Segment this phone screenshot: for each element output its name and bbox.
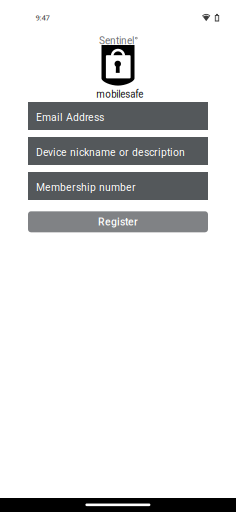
- button[interactable]: Email Address: [28, 102, 208, 130]
- staticText: Device nickname or description: [36, 146, 185, 159]
- staticText: mobilesafe: [96, 88, 143, 100]
- button[interactable]: Membership number: [28, 172, 208, 200]
- staticText: Email Address: [36, 111, 104, 124]
- button[interactable]: Device nickname or description: [28, 137, 208, 165]
- staticText: Membership number: [36, 181, 136, 194]
- staticText: Sentinel: [99, 34, 134, 47]
- button[interactable]: Register: [28, 211, 208, 232]
- staticText: 9:47: [35, 13, 49, 22]
- staticText: Register: [98, 215, 138, 228]
